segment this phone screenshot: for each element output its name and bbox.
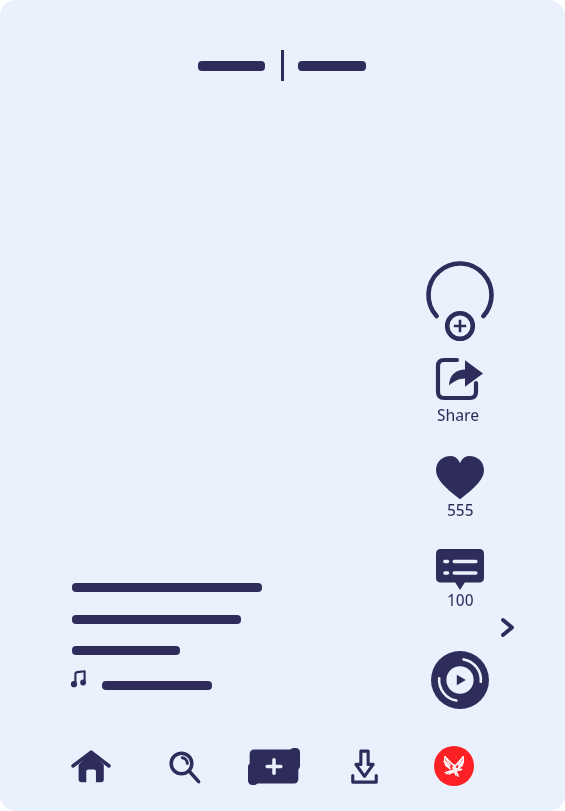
staticText: 555	[447, 499, 474, 520]
button[interactable]: Profile	[426, 739, 482, 795]
button[interactable]: Comments, 100	[430, 543, 490, 615]
button[interactable]: Follow creator	[424, 258, 496, 346]
button[interactable]: For You	[298, 61, 366, 71]
button[interactable]: Create	[243, 739, 299, 795]
button[interactable]: Following	[198, 61, 265, 71]
button[interactable]: Inbox	[336, 739, 392, 795]
button[interactable]: Search	[153, 739, 209, 795]
button[interactable]: Like, 555	[430, 450, 490, 522]
staticText: Share	[437, 404, 480, 425]
staticText: 100	[447, 589, 474, 610]
button[interactable]: Next	[488, 608, 528, 648]
button[interactable]: Home	[63, 739, 119, 795]
button[interactable]: Share	[428, 352, 492, 428]
button[interactable]: Music	[431, 651, 489, 709]
